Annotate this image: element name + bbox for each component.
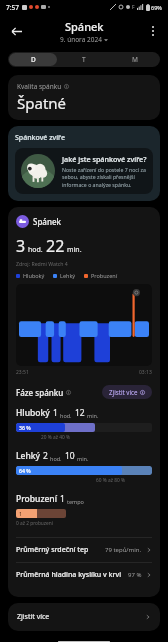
staticText: 79 tepů/min.	[105, 546, 142, 554]
staticText: Spánek	[65, 19, 104, 34]
staticText: Hluboký	[16, 407, 50, 419]
staticText: Fáze spánku	[16, 387, 64, 398]
button[interactable]: Kvalita spánku	[8, 75, 160, 120]
button[interactable]: Průměrná hladina kyslíku v krvi	[16, 563, 152, 587]
staticText: Noste zařízení do postele 7 nocí za sebo…	[62, 166, 147, 188]
button[interactable]: Průměrný srdeční tep	[16, 538, 152, 562]
staticText: Špatné	[17, 93, 67, 113]
staticText: Spánek	[33, 216, 62, 227]
staticText: tempo	[67, 498, 84, 505]
staticText: Jaké jste spánkové zvíře?	[62, 154, 147, 164]
staticText: 10	[65, 450, 75, 462]
staticText: min.	[77, 455, 89, 462]
staticText: 2	[43, 450, 48, 462]
staticText: 1	[53, 407, 58, 419]
staticText: Hluboký	[23, 272, 45, 279]
staticText: Zdroj: Redmi Watch 4	[16, 260, 68, 267]
staticText: T	[82, 55, 86, 64]
staticText: 0 až 2 probuzení	[16, 520, 53, 527]
staticText: F	[132, 4, 135, 11]
button[interactable]: M	[110, 53, 159, 66]
staticText: 22	[46, 235, 65, 257]
staticText: 69%	[151, 4, 162, 11]
staticText: hod.	[50, 455, 62, 462]
button[interactable]: T	[59, 53, 108, 66]
staticText: 20 % až 40 %	[41, 434, 70, 441]
staticText: hod.	[28, 245, 43, 255]
staticText: min.	[67, 245, 82, 255]
staticText: Průměrná hladina kyslíku v krvi	[16, 570, 122, 580]
button[interactable]: Zjistit více	[8, 603, 160, 631]
staticText: Spánkové zvíře	[15, 133, 65, 143]
staticText: 12	[75, 407, 85, 419]
staticText: Lehký	[60, 272, 76, 279]
staticText: Probuzení	[16, 493, 57, 505]
staticText: min.	[87, 412, 99, 419]
staticText: 60 % až 80 %	[96, 477, 125, 484]
button[interactable]: Zjistit více	[102, 385, 152, 399]
staticText: 7:57	[6, 3, 19, 12]
staticText: 1	[60, 493, 65, 505]
staticText: Kvalita spánku	[17, 82, 62, 91]
staticText: M	[132, 55, 138, 64]
staticText: 23:51	[16, 369, 29, 376]
button[interactable]: Back	[6, 21, 26, 41]
staticText: 36 %	[19, 424, 31, 431]
staticText: D	[31, 55, 36, 64]
staticText: 03:13	[139, 369, 152, 376]
staticText: Zjistit více	[17, 612, 50, 622]
staticText: 97 %	[128, 571, 142, 579]
staticText: 9. února 2024	[60, 35, 102, 44]
staticText: hod.	[60, 412, 72, 419]
staticText: 1	[19, 510, 22, 517]
button[interactable]: D	[9, 53, 57, 66]
button[interactable]: Spánkové zvíře	[8, 126, 160, 201]
staticText: 64 %	[19, 467, 31, 474]
staticText: Probuzení	[91, 272, 118, 279]
button[interactable]: 9. února 2024	[58, 35, 110, 44]
staticText: Lehký	[16, 450, 40, 462]
staticText: 3	[16, 235, 26, 257]
staticText: Průměrný srdeční tep	[16, 545, 89, 555]
staticText: Zjistit více	[109, 388, 138, 396]
button[interactable]: More options	[144, 22, 162, 40]
